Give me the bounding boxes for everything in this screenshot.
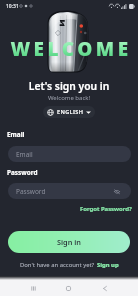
button[interactable]: Forgot Password? xyxy=(79,204,133,214)
button[interactable]: Email xyxy=(8,146,131,162)
button[interactable]: Sign up xyxy=(97,261,119,269)
staticText: Sign up xyxy=(97,261,119,269)
button[interactable]: Recents xyxy=(26,280,40,296)
button[interactable]: Sign in xyxy=(8,231,130,253)
button[interactable]: Back xyxy=(98,280,112,296)
button[interactable]: ENGLISH xyxy=(43,106,95,118)
staticText: 10:31 xyxy=(6,3,19,10)
staticText: Let's sign you in xyxy=(0,79,138,93)
other: Show password xyxy=(114,189,120,194)
staticText: ENGLISH xyxy=(57,108,84,116)
staticText: Forgot Password? xyxy=(80,205,132,213)
staticText: Sign in xyxy=(57,237,81,247)
button[interactable]: Password xyxy=(8,183,131,199)
staticText: Email xyxy=(16,150,33,159)
staticText: Password xyxy=(7,168,38,177)
staticText: Email xyxy=(7,130,25,139)
staticText: Welcome back! xyxy=(0,94,138,102)
staticText: WELCOME xyxy=(2,36,138,62)
staticText: Don't have an account yet? xyxy=(20,261,95,269)
button[interactable]: Home xyxy=(61,280,75,296)
staticText: Password xyxy=(16,187,46,196)
